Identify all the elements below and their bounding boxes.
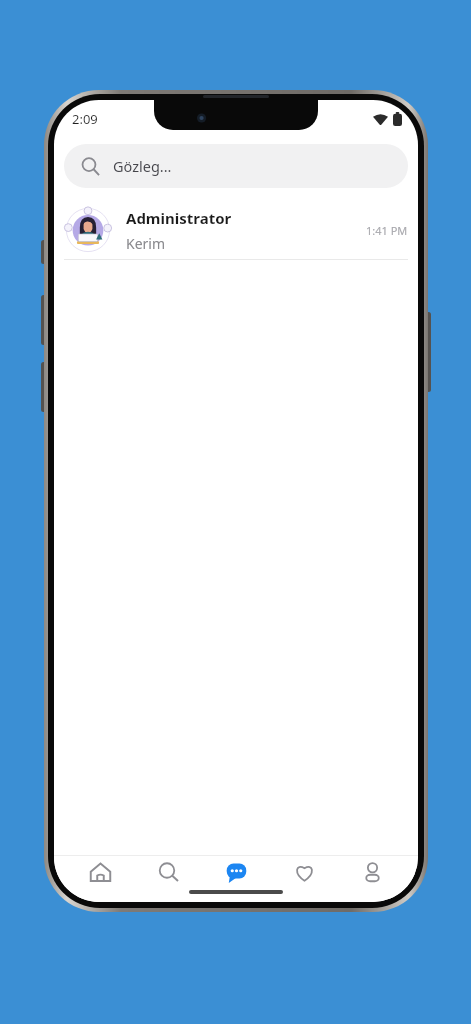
button[interactable]: Gözleg... <box>64 144 408 188</box>
staticText: Gözleg... <box>113 156 172 176</box>
staticText: 1:41 PM <box>366 223 408 238</box>
button[interactable]: Search <box>146 858 190 902</box>
button[interactable]: Messages <box>214 858 258 902</box>
staticText: Administrator <box>126 208 232 228</box>
button[interactable]: Home <box>78 858 122 902</box>
button[interactable]: Profile <box>350 858 394 902</box>
staticText: Kerim <box>126 234 166 253</box>
staticText: 2:09 <box>72 110 98 128</box>
button[interactable]: Likes <box>282 858 326 902</box>
button[interactable]: Administrator <box>54 201 418 259</box>
